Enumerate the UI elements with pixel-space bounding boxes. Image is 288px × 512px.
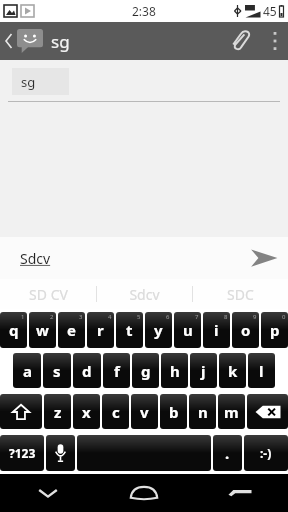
- staticText: t: [126, 320, 133, 340]
- button[interactable]: o: [232, 312, 259, 348]
- button[interactable]: v: [131, 394, 158, 429]
- staticText: ?123: [9, 445, 36, 461]
- button[interactable]: Sdcv: [97, 279, 192, 309]
- button[interactable]: :-): [244, 435, 288, 471]
- button[interactable]: h: [161, 353, 188, 388]
- staticText: x: [82, 402, 91, 422]
- staticText: d: [82, 361, 92, 381]
- staticText: 4: [108, 313, 112, 321]
- staticText: f: [114, 361, 120, 381]
- staticText: y: [154, 320, 163, 340]
- staticText: a: [23, 361, 32, 381]
- button[interactable]: x: [73, 394, 100, 429]
- button[interactable]: t: [116, 312, 143, 348]
- button[interactable]: sg: [12, 68, 69, 95]
- staticText: k: [228, 361, 238, 381]
- staticText: Sdcv: [129, 285, 160, 304]
- staticText: 0: [282, 313, 286, 321]
- staticText: s: [53, 361, 61, 381]
- staticText: w: [36, 320, 49, 340]
- staticText: g: [141, 361, 151, 381]
- staticText: h: [170, 361, 180, 381]
- button[interactable]: ?123: [0, 435, 44, 471]
- button[interactable]: i: [203, 312, 230, 348]
- button[interactable]: e: [58, 312, 85, 348]
- staticText: j: [201, 361, 206, 381]
- staticText: n: [198, 402, 208, 422]
- staticText: b: [169, 402, 179, 422]
- button[interactable]: j: [190, 353, 217, 388]
- button[interactable]: l: [248, 353, 275, 388]
- button[interactable]: p: [261, 312, 288, 348]
- staticText: r: [97, 320, 104, 340]
- button[interactable]: Attach: [218, 22, 262, 60]
- staticText: q: [9, 320, 19, 340]
- button[interactable]: c: [102, 394, 129, 429]
- button[interactable]: z: [44, 394, 71, 429]
- button[interactable]: m: [218, 394, 245, 429]
- staticText: u: [183, 320, 193, 340]
- staticText: :-): [260, 445, 272, 461]
- button[interactable]: Back: [0, 22, 45, 60]
- staticText: c: [112, 402, 120, 422]
- staticText: i: [214, 320, 219, 340]
- button[interactable]: Space: [77, 435, 211, 471]
- staticText: z: [54, 402, 62, 422]
- button[interactable]: Sdcv: [20, 249, 51, 268]
- button[interactable]: q: [0, 312, 27, 348]
- button[interactable]: w: [29, 312, 56, 348]
- staticText: 5: [137, 313, 141, 321]
- button[interactable]: SD CV: [0, 279, 96, 309]
- staticText: v: [140, 402, 149, 422]
- button[interactable]: Shift: [0, 394, 42, 429]
- staticText: l: [259, 361, 264, 381]
- button[interactable]: k: [219, 353, 246, 388]
- staticText: 7: [195, 313, 199, 321]
- button[interactable]: a: [13, 353, 41, 388]
- staticText: 45: [263, 3, 277, 19]
- button[interactable]: f: [103, 353, 130, 388]
- button[interactable]: Hide keyboard: [0, 474, 96, 512]
- staticText: 2:38: [132, 3, 156, 19]
- button[interactable]: r: [87, 312, 114, 348]
- button[interactable]: More options: [262, 22, 288, 60]
- staticText: sg: [51, 30, 70, 53]
- staticText: o: [241, 320, 251, 340]
- staticText: m: [224, 402, 239, 422]
- button[interactable]: y: [145, 312, 172, 348]
- button[interactable]: Send: [240, 237, 288, 279]
- button[interactable]: u: [174, 312, 201, 348]
- staticText: SD CV: [29, 285, 68, 304]
- staticText: 9: [253, 313, 257, 321]
- button[interactable]: SDC: [193, 279, 288, 309]
- staticText: sg: [21, 73, 36, 91]
- staticText: 2: [50, 313, 54, 321]
- button[interactable]: Voice input: [46, 435, 75, 471]
- button[interactable]: .: [213, 435, 242, 471]
- button[interactable]: Home: [96, 474, 192, 512]
- button[interactable]: d: [73, 353, 101, 388]
- staticText: p: [270, 320, 280, 340]
- button[interactable]: b: [160, 394, 187, 429]
- staticText: SDC: [227, 285, 254, 304]
- button[interactable]: Backspace: [247, 394, 288, 429]
- button[interactable]: s: [43, 353, 71, 388]
- staticText: 3: [79, 313, 83, 321]
- staticText: e: [67, 320, 76, 340]
- staticText: 1: [21, 313, 25, 321]
- staticText: 8: [224, 313, 228, 321]
- button[interactable]: g: [132, 353, 159, 388]
- button[interactable]: Recent apps: [192, 474, 288, 512]
- staticText: 6: [166, 313, 170, 321]
- staticText: .: [225, 443, 230, 463]
- button[interactable]: n: [189, 394, 216, 429]
